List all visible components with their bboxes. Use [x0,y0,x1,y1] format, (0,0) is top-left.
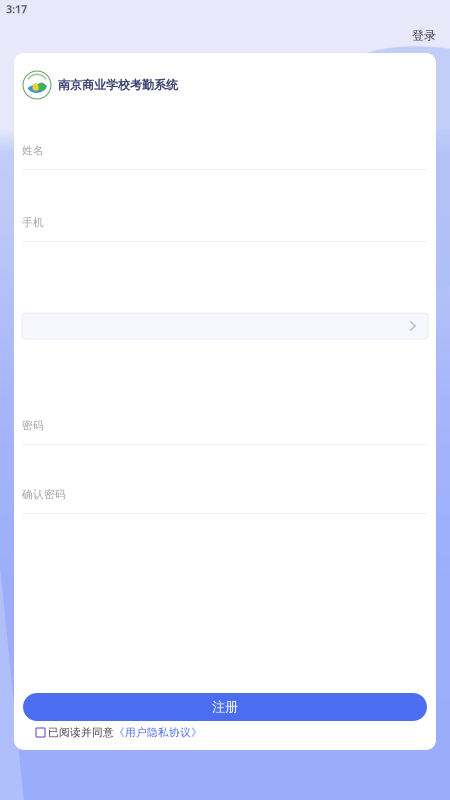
staticText: 手机 [22,216,44,229]
staticText: 南京商业学校考勤系统 [58,78,178,92]
button[interactable]: 登录 [405,22,443,49]
button[interactable] [22,313,428,339]
staticText: 注册 [212,699,238,715]
staticText: 密码 [22,419,44,432]
staticText: 确认密码 [22,488,66,501]
staticText: 3:17 [6,2,27,16]
button[interactable]: 《用户隐私协议》 [114,726,202,739]
staticText: 已阅读并同意 [48,726,114,739]
button[interactable]: 注册 [23,693,427,721]
staticText: 姓名 [22,144,44,157]
button[interactable]: 同意用户隐私协议 [33,724,48,741]
staticText: 《用户隐私协议》 [114,726,202,739]
staticText: 登录 [412,28,436,43]
